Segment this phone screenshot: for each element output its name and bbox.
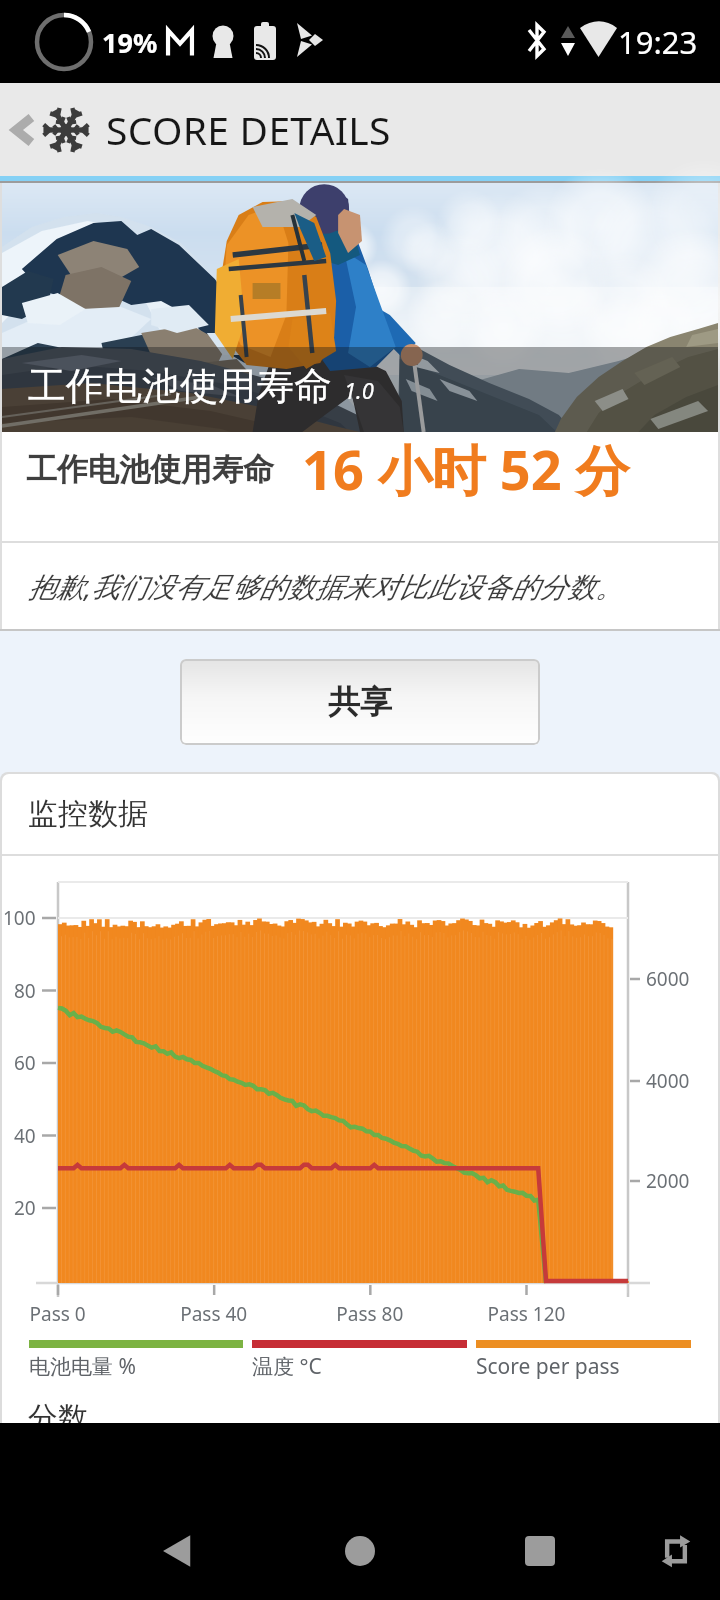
- staticText: 抱歉,我们没有足够的数据来对比此设备的分数。: [28, 567, 624, 605]
- button[interactable]: 共享: [180, 659, 540, 745]
- staticText: 监控数据: [28, 795, 148, 833]
- button[interactable]: Back: [138, 1511, 218, 1591]
- staticText: SCORE DETAILS: [106, 103, 391, 156]
- button[interactable]: Back: [0, 83, 720, 176]
- staticText: 共享: [328, 682, 392, 722]
- staticText: 工作电池使用寿命: [26, 450, 274, 489]
- staticText: 1.0: [344, 375, 374, 405]
- staticText: 分数: [28, 1399, 88, 1437]
- other: Back: [8, 115, 38, 145]
- staticText: 电池电量 %: [29, 1352, 243, 1381]
- staticText: 温度 °C: [252, 1352, 467, 1381]
- button[interactable]: Recent apps: [500, 1511, 580, 1591]
- staticText: Score per pass: [476, 1352, 691, 1381]
- staticText: 工作电池使用寿命: [28, 362, 332, 410]
- staticText: 16 小时 52 分: [302, 432, 630, 506]
- button[interactable]: Rotate screen: [636, 1511, 716, 1591]
- button[interactable]: Home: [320, 1511, 400, 1591]
